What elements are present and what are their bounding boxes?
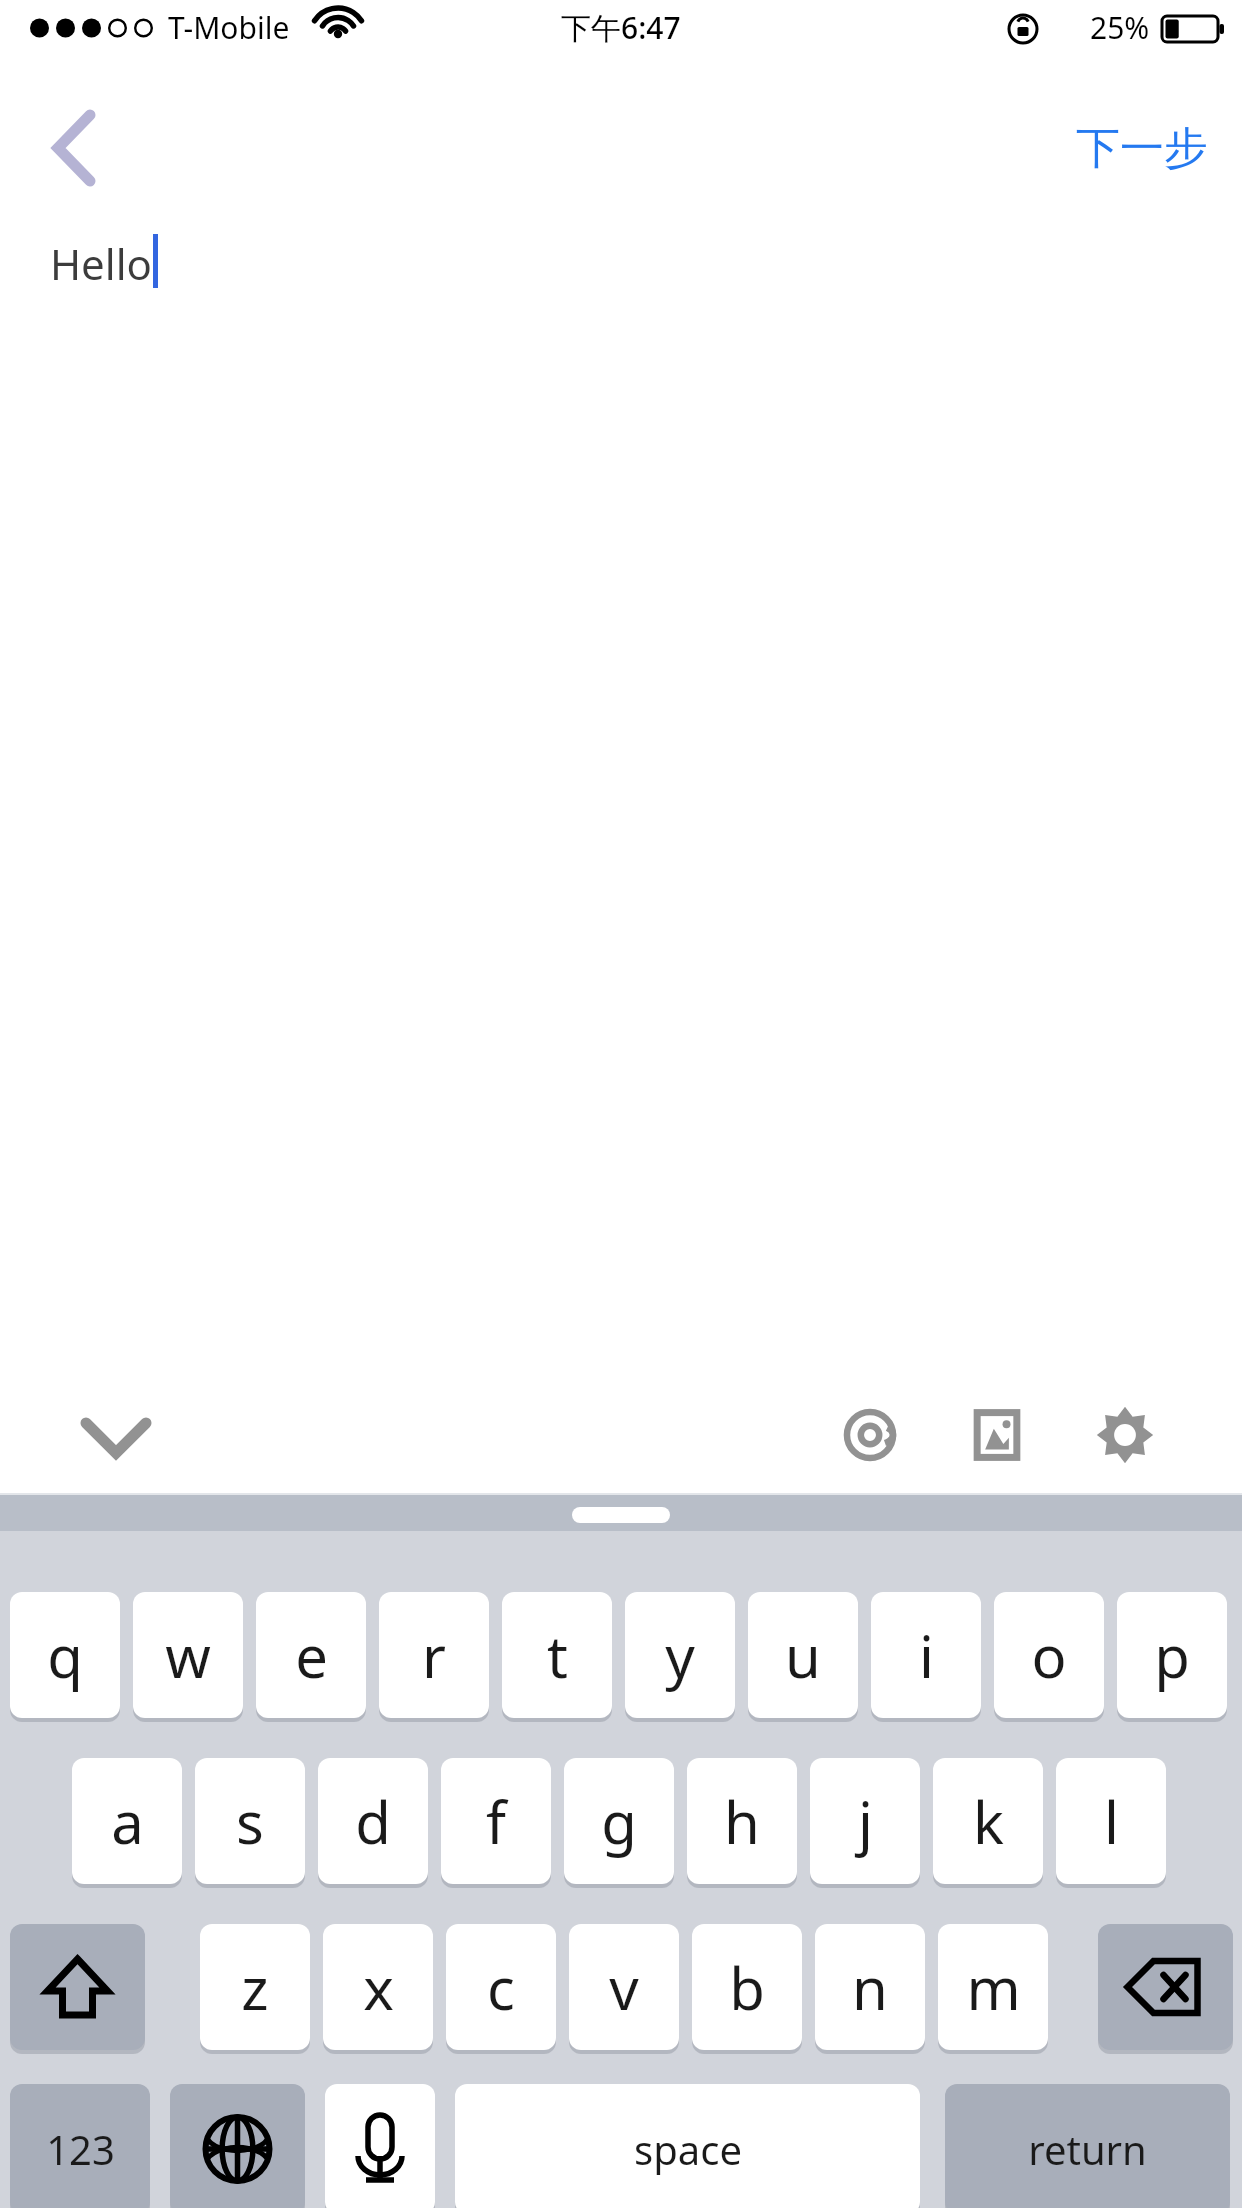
button[interactable]: h: [687, 1758, 797, 1889]
staticText: l: [1104, 1782, 1119, 1861]
button[interactable]: Insert image: [947, 1385, 1047, 1485]
staticText: b: [729, 1948, 765, 2027]
button[interactable]: l: [1056, 1758, 1166, 1889]
staticText: Hello: [50, 235, 152, 292]
button[interactable]: z: [200, 1924, 310, 2055]
staticText: a: [111, 1782, 144, 1861]
button[interactable]: e: [256, 1592, 366, 1723]
staticText: t: [547, 1616, 568, 1695]
staticText: y: [665, 1616, 695, 1695]
staticText: p: [1154, 1616, 1190, 1695]
staticText: 123: [46, 2122, 115, 2176]
staticText: T-Mobile: [168, 7, 290, 48]
button[interactable]: y: [625, 1592, 735, 1723]
button[interactable]: Mention: [820, 1385, 920, 1485]
button[interactable]: d: [318, 1758, 428, 1889]
button[interactable]: u: [748, 1592, 858, 1723]
staticText: c: [487, 1948, 515, 2027]
button[interactable]: b: [692, 1924, 802, 2055]
button[interactable]: w: [133, 1592, 243, 1723]
button[interactable]: Backspace: [1098, 1924, 1233, 2055]
staticText: n: [852, 1948, 888, 2027]
button[interactable]: c: [446, 1924, 556, 2055]
staticText: m: [966, 1948, 1021, 2027]
button[interactable]: Change keyboard: [170, 2084, 305, 2208]
staticText: z: [241, 1948, 269, 2027]
button[interactable]: Voice input: [325, 2084, 435, 2208]
staticText: r: [422, 1616, 446, 1695]
button[interactable]: f: [441, 1758, 551, 1889]
staticText: 25%: [1090, 7, 1150, 48]
staticText: e: [295, 1616, 328, 1695]
button[interactable]: 下一步: [1076, 121, 1208, 176]
staticText: j: [858, 1782, 873, 1861]
staticText: 下午6:47: [561, 7, 681, 48]
staticText: u: [785, 1616, 821, 1695]
staticText: x: [363, 1948, 394, 2027]
staticText: f: [486, 1782, 506, 1861]
staticText: o: [1031, 1616, 1067, 1695]
button[interactable]: q: [10, 1592, 120, 1723]
button[interactable]: Shift: [10, 1924, 145, 2055]
staticText: space: [634, 2122, 742, 2176]
staticText: return: [1028, 2122, 1147, 2176]
staticText: q: [47, 1616, 83, 1695]
staticText: s: [236, 1782, 264, 1861]
button[interactable]: Hide keyboard: [62, 1381, 170, 1489]
button[interactable]: k: [933, 1758, 1043, 1889]
staticText: k: [973, 1782, 1004, 1861]
staticText: i: [919, 1616, 934, 1695]
button[interactable]: s: [195, 1758, 305, 1889]
button[interactable]: a: [72, 1758, 182, 1889]
button[interactable]: space: [455, 2084, 920, 2208]
staticText: w: [165, 1616, 211, 1695]
staticText: d: [355, 1782, 391, 1861]
staticText: g: [601, 1782, 637, 1861]
button[interactable]: 123: [10, 2084, 150, 2208]
button[interactable]: v: [569, 1924, 679, 2055]
button[interactable]: return: [945, 2084, 1230, 2208]
button[interactable]: r: [379, 1592, 489, 1723]
staticText: 下一步: [1076, 121, 1208, 176]
button[interactable]: o: [994, 1592, 1104, 1723]
staticText: h: [724, 1782, 760, 1861]
button[interactable]: Settings: [1075, 1385, 1175, 1485]
button[interactable]: t: [502, 1592, 612, 1723]
button[interactable]: j: [810, 1758, 920, 1889]
button[interactable]: g: [564, 1758, 674, 1889]
button[interactable]: Back: [28, 93, 138, 203]
button[interactable]: i: [871, 1592, 981, 1723]
button[interactable]: n: [815, 1924, 925, 2055]
staticText: v: [609, 1948, 639, 2027]
button[interactable]: x: [323, 1924, 433, 2055]
button[interactable]: p: [1117, 1592, 1227, 1723]
button[interactable]: m: [938, 1924, 1048, 2055]
button[interactable]: Keyboard handle: [572, 1507, 670, 1523]
